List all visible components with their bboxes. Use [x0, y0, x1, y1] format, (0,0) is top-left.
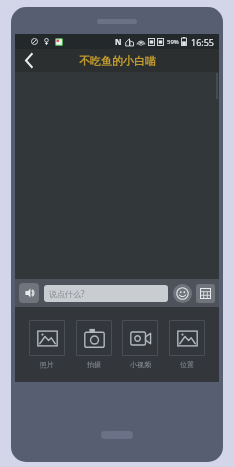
staticText: 拍摄 [87, 360, 101, 369]
staticText: 16:55 [191, 36, 215, 48]
staticText: 小视频 [130, 360, 151, 369]
staticText: 说点什么? [49, 288, 85, 299]
staticText: 不吃鱼的小白喵 [79, 54, 156, 68]
button[interactable]: Home [101, 431, 133, 439]
button[interactable]: 说点什么? [49, 285, 163, 302]
button[interactable]: Camera [74, 320, 114, 369]
button[interactable]: Photos [27, 320, 67, 369]
button[interactable]: Back [15, 49, 43, 72]
button[interactable]: More [196, 284, 215, 303]
button[interactable]: Emoji [173, 284, 192, 303]
staticText: N [115, 36, 122, 47]
button[interactable]: Short video [120, 320, 160, 369]
staticText: 59% [167, 38, 179, 46]
button[interactable]: Voice input [19, 283, 39, 303]
staticText: 照片 [40, 360, 54, 369]
staticText: 位置 [180, 360, 194, 369]
button[interactable]: Location [167, 320, 207, 369]
